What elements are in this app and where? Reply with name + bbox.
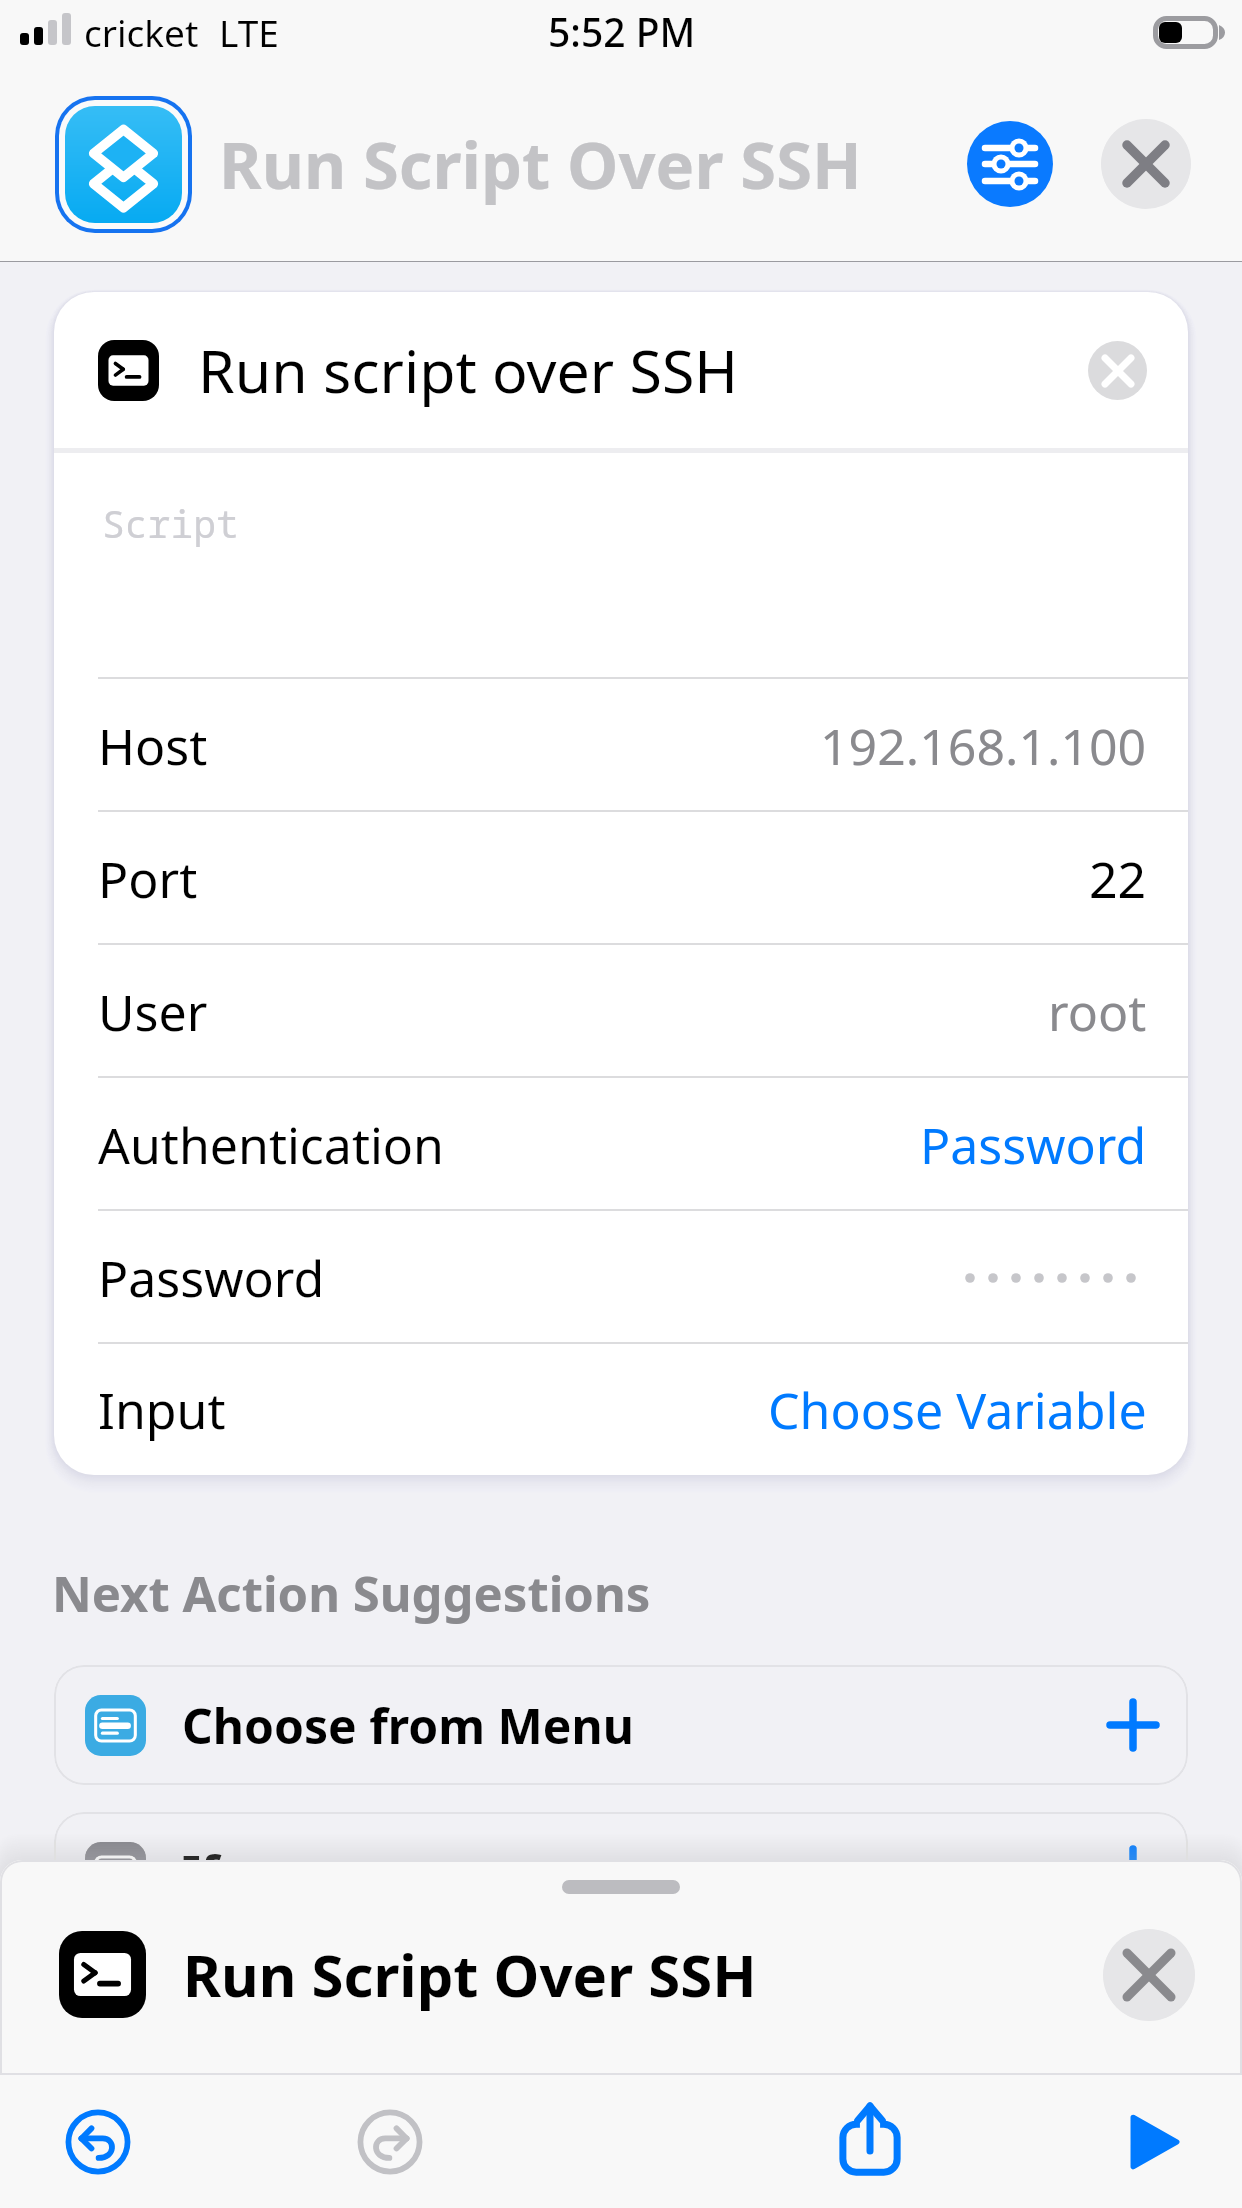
button[interactable]: Input (54, 1344, 1188, 1475)
button[interactable]: Adjust settings (967, 121, 1053, 207)
staticText: Authentication (98, 1111, 444, 1179)
staticText: Next Action Suggestions (52, 1560, 651, 1627)
button[interactable]: Close (1088, 341, 1147, 400)
staticText: Password (920, 1111, 1147, 1179)
staticText: LTE (219, 7, 279, 57)
staticText: cricket (84, 7, 199, 57)
staticText: User (98, 978, 208, 1046)
button[interactable]: Authentication (54, 1078, 1188, 1211)
staticText: Port (98, 845, 198, 913)
staticText: Password (98, 1244, 325, 1312)
staticText: root (1048, 978, 1147, 1046)
staticText: Script (102, 497, 239, 549)
staticText: 5:52 PM (548, 5, 696, 58)
button[interactable]: Host (54, 679, 1188, 812)
button[interactable]: Close (1101, 119, 1191, 209)
button[interactable]: Close (1103, 1929, 1195, 2021)
button[interactable]: Password (54, 1211, 1188, 1344)
button[interactable]: Share (822, 2094, 918, 2190)
staticText: Input (98, 1376, 226, 1444)
staticText: 192.168.1.100 (820, 712, 1147, 780)
staticText: Choose Variable (768, 1376, 1147, 1444)
button[interactable]: Redo (342, 2094, 438, 2190)
button[interactable]: User (54, 945, 1188, 1078)
button[interactable]: If (54, 1812, 1188, 1932)
staticText: Run Script Over SSH (183, 1935, 1103, 2014)
button[interactable]: Undo (50, 2094, 146, 2190)
button[interactable]: Choose from Menu (54, 1665, 1188, 1785)
staticText: If (182, 1840, 1109, 1905)
staticText: 22 (1089, 845, 1147, 913)
staticText: Choose from Menu (182, 1693, 1109, 1758)
button[interactable]: Port (54, 812, 1188, 945)
staticText: Run Script Over SSH (219, 120, 967, 209)
staticText: Host (98, 712, 208, 780)
staticText: Run script over SSH (198, 330, 1088, 410)
button[interactable]: Run (1107, 2094, 1203, 2190)
